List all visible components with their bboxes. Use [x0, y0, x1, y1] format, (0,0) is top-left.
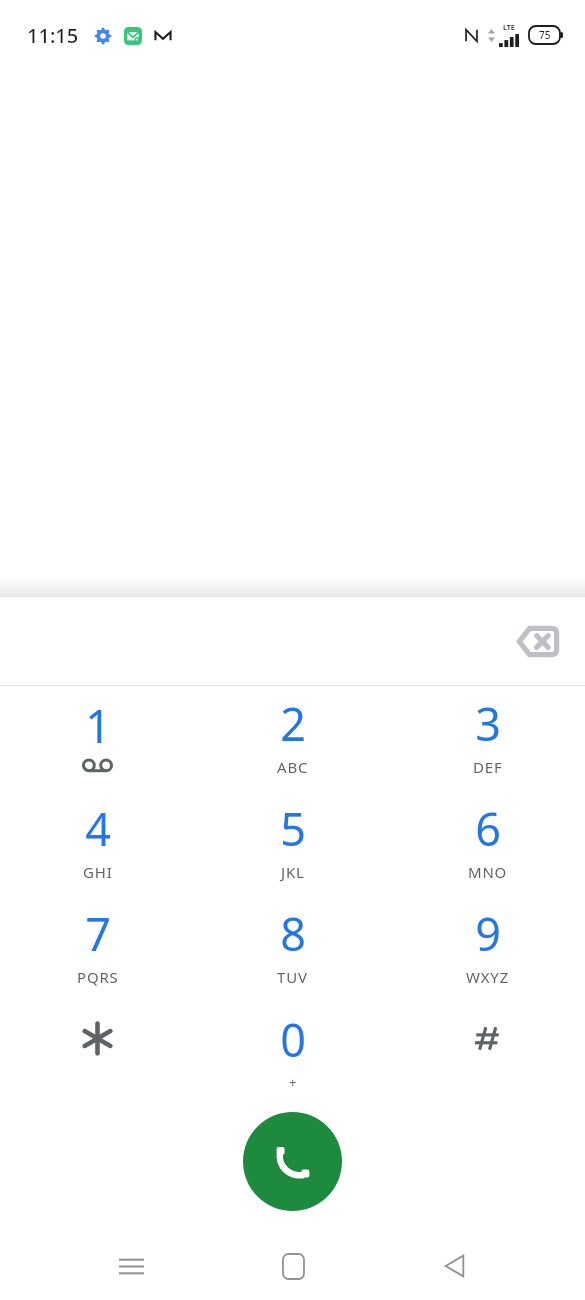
- button[interactable]: 1: [0, 686, 195, 791]
- button[interactable]: 9: [390, 896, 585, 1001]
- button[interactable]: Home: [262, 1235, 324, 1297]
- button[interactable]: 4: [0, 791, 195, 896]
- staticText: GHI: [83, 862, 113, 882]
- button[interactable]: 0: [195, 1001, 390, 1106]
- staticText: ABC: [277, 757, 309, 777]
- staticText: 5: [280, 798, 306, 859]
- staticText: WXYZ: [466, 967, 510, 987]
- button[interactable]: Recent apps: [100, 1235, 162, 1297]
- button[interactable]: 3: [390, 686, 585, 791]
- staticText: 0: [280, 1009, 306, 1070]
- button[interactable]: Backspace: [507, 610, 569, 672]
- staticText: 11:15: [27, 22, 79, 49]
- staticText: 2: [280, 693, 306, 754]
- staticText: 7: [85, 903, 111, 964]
- staticText: JKL: [281, 862, 305, 882]
- staticText: 8: [280, 903, 306, 964]
- button[interactable]: [390, 1001, 585, 1106]
- button[interactable]: 7: [0, 896, 195, 1001]
- staticText: 6: [475, 798, 501, 859]
- button[interactable]: Call: [243, 1112, 342, 1211]
- staticText: 9: [475, 903, 501, 964]
- staticText: DEF: [473, 757, 503, 777]
- staticText: MNO: [468, 862, 508, 882]
- staticText: LTE: [503, 23, 515, 33]
- staticText: 3: [475, 693, 501, 754]
- staticText: PQRS: [77, 967, 119, 987]
- staticText: 1: [85, 695, 111, 756]
- staticText: TUV: [277, 967, 308, 987]
- button[interactable]: 2: [195, 686, 390, 791]
- button[interactable]: 5: [195, 791, 390, 896]
- button[interactable]: 6: [390, 791, 585, 896]
- staticText: 4: [85, 798, 111, 859]
- button[interactable]: 8: [195, 896, 390, 1001]
- button[interactable]: [0, 1001, 195, 1106]
- button[interactable]: Back: [423, 1235, 485, 1297]
- staticText: 75: [539, 28, 551, 42]
- staticText: +: [289, 1073, 297, 1091]
